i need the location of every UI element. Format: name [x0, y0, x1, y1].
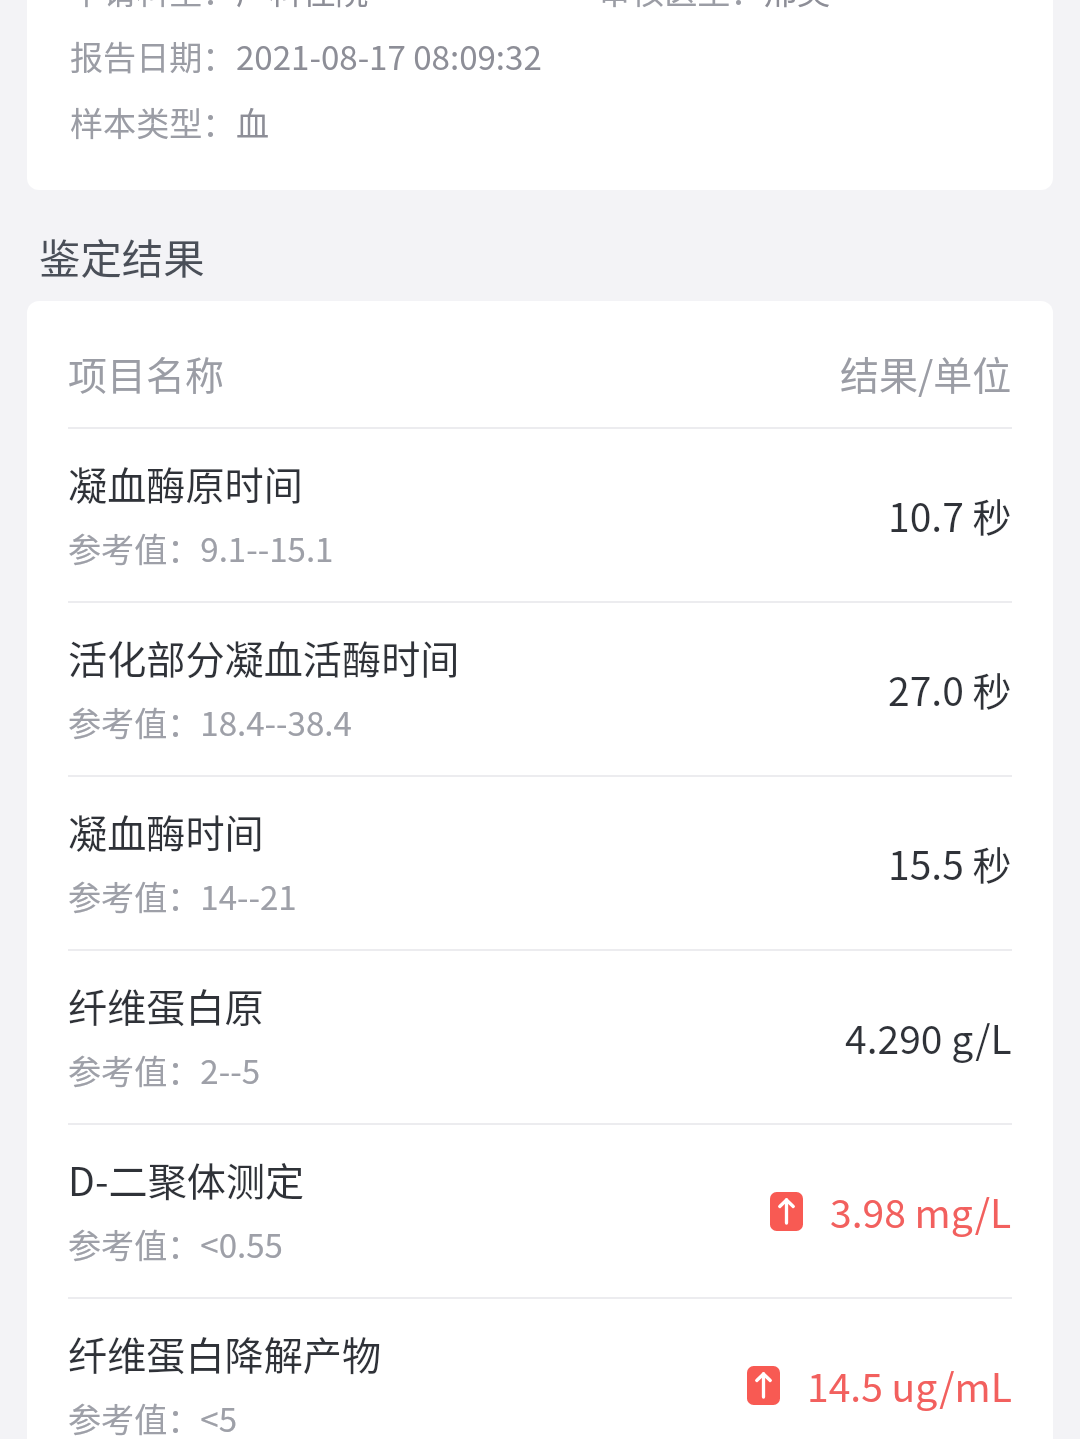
button[interactable]: 活化部分凝血活酶时间: [27, 603, 1053, 775]
button[interactable]: 纤维蛋白降解产物: [27, 1299, 1053, 1439]
staticText: 结果/单位: [840, 345, 1012, 401]
staticText: 产科住院: [236, 0, 369, 14]
button[interactable]: 凝血酶原时间: [27, 429, 1053, 601]
button[interactable]: 审核医生：: [598, 0, 1053, 14]
staticText: 活化部分凝血活酶时间: [68, 629, 460, 686]
button[interactable]: D-二聚体测定: [27, 1125, 1053, 1297]
staticText: 3.98 mg/L: [830, 1183, 1012, 1239]
staticText: 申请科室：: [70, 0, 236, 14]
staticText: 参考值：<5: [68, 1394, 238, 1439]
button[interactable]: 纤维蛋白原: [27, 951, 1053, 1123]
staticText: 审核医生：: [598, 0, 764, 14]
staticText: 参考值：9.1--15.1: [68, 524, 334, 572]
staticText: 样本类型：: [70, 98, 236, 146]
staticText: 2021-08-17 08:09:32: [236, 32, 542, 80]
staticText: 参考值：14--21: [68, 872, 297, 920]
staticText: 27.0 秒: [888, 661, 1012, 717]
staticText: 4.290 g/L: [845, 1009, 1012, 1065]
staticText: 邢英: [764, 0, 831, 14]
button[interactable]: 凝血酶时间: [27, 777, 1053, 949]
staticText: 报告日期：: [70, 32, 236, 80]
staticText: 凝血酶原时间: [68, 455, 303, 512]
staticText: 参考值：18.4--38.4: [68, 698, 352, 746]
staticText: 项目名称: [68, 345, 225, 401]
staticText: 凝血酶时间: [68, 803, 264, 860]
staticText: 14.5 ug/mL: [807, 1357, 1012, 1413]
staticText: 纤维蛋白降解产物: [68, 1325, 382, 1382]
other: Above reference range: [770, 1192, 803, 1231]
staticText: 15.5 秒: [888, 835, 1012, 891]
staticText: 10.7 秒: [888, 487, 1012, 543]
staticText: 鉴定结果: [39, 226, 205, 286]
staticText: 纤维蛋白原: [68, 977, 264, 1034]
staticText: 血: [236, 98, 270, 146]
staticText: D-二聚体测定: [68, 1151, 305, 1208]
staticText: 参考值：2--5: [68, 1046, 260, 1094]
staticText: 参考值：<0.55: [68, 1220, 283, 1268]
other: Above reference range: [747, 1366, 780, 1405]
